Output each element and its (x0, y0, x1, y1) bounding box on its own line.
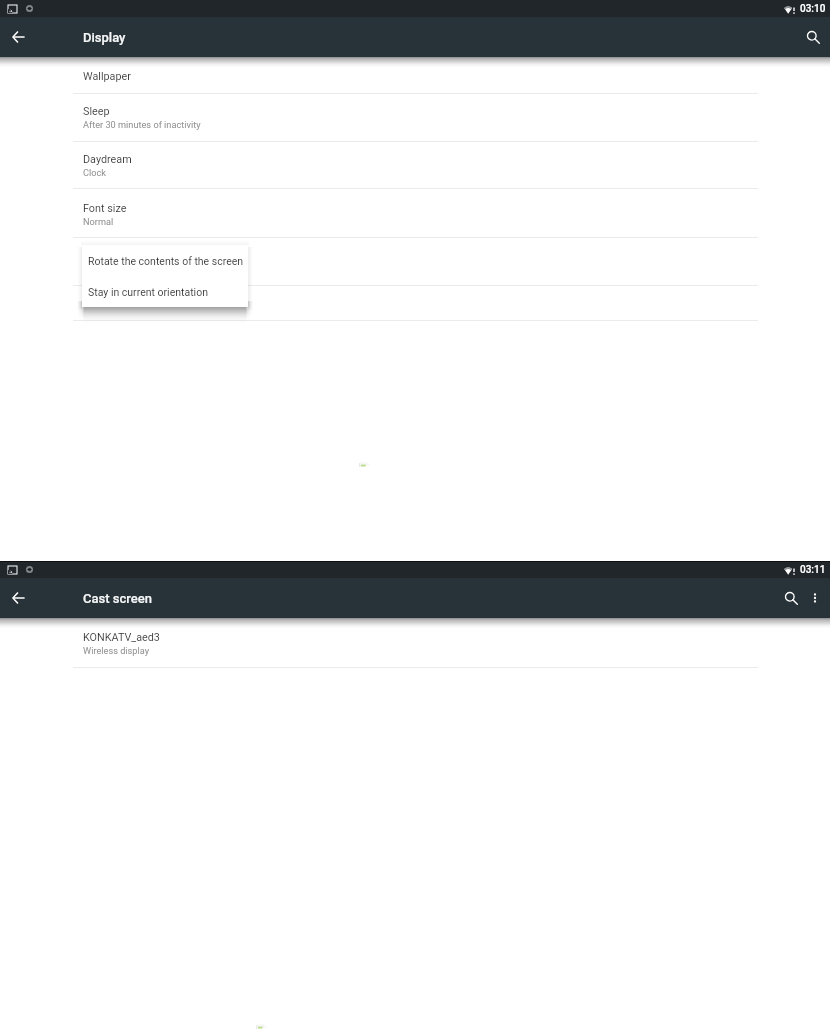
button[interactable]: Wallpaper (0, 64, 830, 93)
staticText: Clock (83, 167, 106, 178)
button[interactable]: KONKATV_aed3 (0, 624, 830, 667)
staticText: Sleep (83, 105, 110, 118)
staticText: 03:10 (800, 3, 826, 15)
staticText: Wallpaper (83, 70, 131, 83)
button[interactable]: Font size (0, 189, 830, 237)
button[interactable]: Rotate the contents of the screen (82, 245, 248, 276)
staticText: Daydream (83, 153, 132, 166)
button[interactable]: Navigate up (4, 23, 32, 51)
button[interactable]: Search (799, 23, 827, 51)
staticText: Wireless display (83, 645, 149, 656)
staticText: 03:11 (800, 564, 826, 576)
button[interactable]: Sleep (0, 94, 830, 141)
button[interactable]: Daydream (0, 142, 830, 188)
staticText: Display (83, 30, 126, 45)
button[interactable]: More options (801, 584, 829, 612)
button[interactable]: Search (777, 584, 805, 612)
staticText: After 30 minutes of inactivity (83, 119, 201, 130)
staticText: KONKATV_aed3 (83, 631, 160, 644)
staticText: Normal (83, 216, 114, 227)
staticText: Rotate the contents of the screen (88, 255, 244, 267)
staticText: Cast screen (83, 591, 152, 606)
button[interactable]: Navigate up (4, 584, 32, 612)
staticText: Font size (83, 202, 127, 215)
staticText: Stay in current orientation (88, 286, 208, 298)
button[interactable]: Stay in current orientation (82, 276, 248, 307)
